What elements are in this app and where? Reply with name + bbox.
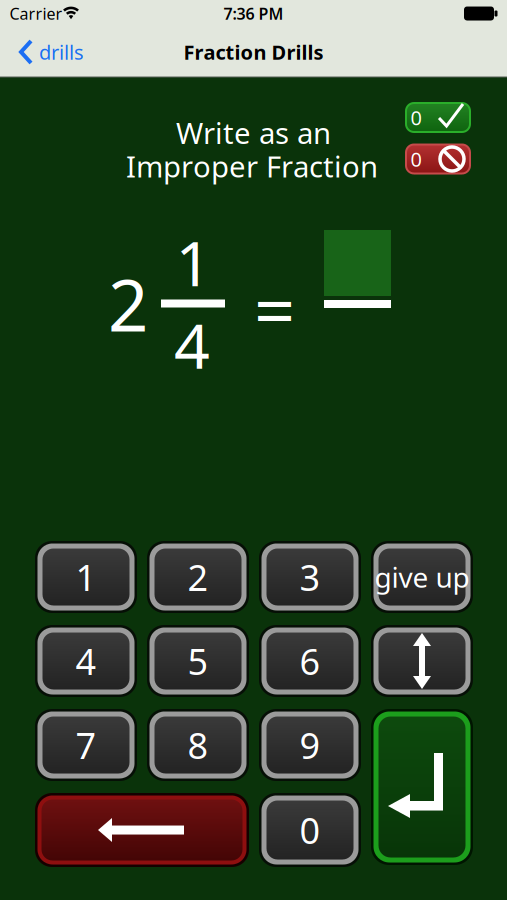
staticText: 6 bbox=[299, 637, 320, 685]
staticText: 9 bbox=[299, 721, 320, 769]
button[interactable]: 3 bbox=[259, 541, 361, 613]
staticText: 2 bbox=[187, 553, 208, 601]
staticText: 4 bbox=[174, 303, 210, 386]
button[interactable]: 7 bbox=[35, 709, 137, 781]
staticText: Fraction Drills bbox=[183, 39, 323, 65]
staticText: Improper Fraction bbox=[126, 146, 378, 185]
button[interactable]: 0 bbox=[259, 793, 361, 867]
staticText: 0 bbox=[299, 806, 320, 854]
staticText: = bbox=[254, 261, 295, 357]
button[interactable]: 4 bbox=[35, 625, 137, 697]
staticText: give up bbox=[374, 558, 469, 596]
staticText: 3 bbox=[299, 553, 320, 601]
staticText: 7 bbox=[75, 721, 96, 769]
staticText: 8 bbox=[187, 721, 208, 769]
staticText: 0 bbox=[410, 146, 421, 172]
button[interactable]: 6 bbox=[259, 625, 361, 697]
button[interactable]: 2 bbox=[147, 541, 249, 613]
staticText: Write as an bbox=[176, 113, 331, 152]
staticText: 5 bbox=[187, 637, 208, 685]
button[interactable]: Switch numerator and denominator bbox=[371, 625, 473, 697]
button[interactable]: give up bbox=[371, 541, 473, 613]
button[interactable]: 8 bbox=[147, 709, 249, 781]
staticText: 4 bbox=[75, 637, 96, 685]
staticText: 1 bbox=[75, 553, 96, 601]
staticText: 0 bbox=[410, 104, 421, 131]
staticText: 1 bbox=[175, 220, 211, 304]
button[interactable]: Delete bbox=[35, 793, 249, 867]
button[interactable]: Enter bbox=[371, 709, 473, 865]
button[interactable]: 9 bbox=[259, 709, 361, 781]
staticText: Carrier bbox=[9, 3, 62, 24]
button[interactable]: 1 bbox=[35, 541, 137, 613]
staticText: drills bbox=[39, 39, 84, 65]
button[interactable]: 5 bbox=[147, 625, 249, 697]
staticText: 7:36 PM bbox=[223, 3, 283, 24]
staticText: 2 bbox=[108, 257, 148, 351]
button[interactable]: Back to drills bbox=[18, 27, 84, 77]
